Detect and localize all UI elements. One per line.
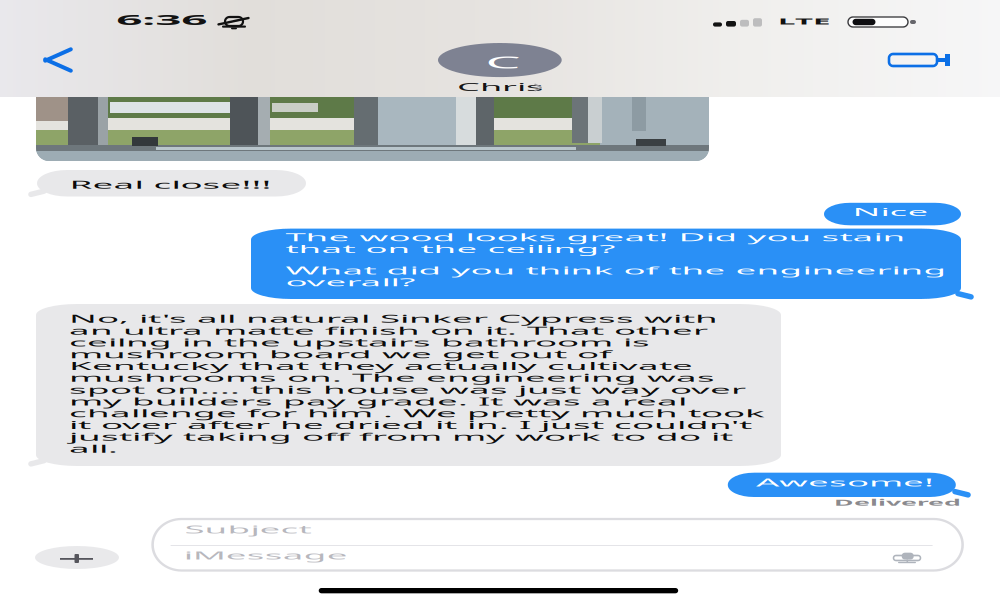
button[interactable]: Chris xyxy=(438,43,562,93)
staticText: mushroom board we get out of xyxy=(69,346,612,396)
staticText: What did you think of the engineering xyxy=(285,263,946,313)
staticText: C xyxy=(485,50,520,127)
staticText: my builders pay grade. It was a real xyxy=(69,394,687,444)
staticText: Real close!!! xyxy=(70,177,272,227)
staticText: Subject xyxy=(184,522,311,572)
staticText: an ultra matte finish on it. That other xyxy=(69,323,708,373)
staticText: Delivered xyxy=(834,497,961,533)
staticText: spot on.... this house was just way over xyxy=(69,382,746,432)
staticText: overall? xyxy=(285,274,415,324)
button[interactable]: Back xyxy=(42,53,74,67)
staticText: 6:36 xyxy=(116,10,207,73)
staticText: mushrooms on. The engineering was xyxy=(69,370,715,420)
button[interactable]: Attach xyxy=(35,546,119,569)
staticText: that on the ceiling? xyxy=(285,241,615,291)
staticText: No, it's all natural Sinker Cypress with xyxy=(69,311,718,361)
button[interactable]: iMessage text field xyxy=(153,519,963,570)
staticText: it over after he dried it in. I just cou… xyxy=(69,417,752,467)
staticText: LTE xyxy=(778,14,830,57)
staticText: Awesome! xyxy=(756,475,934,525)
button[interactable]: Dictate xyxy=(893,552,920,564)
staticText: challenge for him . We pretty much took xyxy=(69,405,765,455)
staticText: ceilng in the upstairs bathroom is xyxy=(69,335,650,385)
staticText: iMessage xyxy=(184,548,348,598)
staticText: The wood looks great! Did you stain xyxy=(285,229,905,279)
staticText: all. xyxy=(69,441,118,491)
staticText: justify taking off from my work to do it xyxy=(69,429,733,479)
staticText: Kentucky that they actually cultivate xyxy=(69,358,693,408)
staticText: Nice xyxy=(852,204,928,254)
button[interactable]: FaceTime xyxy=(889,54,954,66)
staticText: Chris xyxy=(457,79,543,128)
